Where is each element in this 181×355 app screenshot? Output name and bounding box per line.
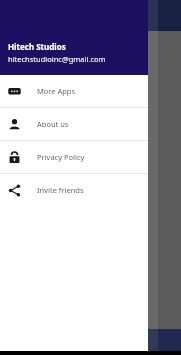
staticText: About us: [37, 119, 69, 129]
button[interactable]: Hitech Studios: [0, 0, 148, 75]
staticText: More Apps: [37, 86, 76, 96]
staticText: hitechstudioinc@gmail.com: [8, 54, 106, 64]
button[interactable]: Privacy Policy: [0, 141, 148, 173]
other: Invite friends: [8, 184, 21, 197]
staticText: Invite friends: [37, 185, 84, 195]
other: About us: [8, 118, 21, 131]
other: More Apps: [8, 85, 21, 98]
staticText: Privacy Policy: [37, 152, 85, 162]
staticText: Hitech Studios: [8, 41, 66, 52]
button[interactable]: Invite friends: [0, 174, 148, 206]
button[interactable]: More Apps: [0, 75, 148, 107]
button[interactable]: About us: [0, 108, 148, 140]
other: Privacy Policy: [8, 151, 21, 164]
